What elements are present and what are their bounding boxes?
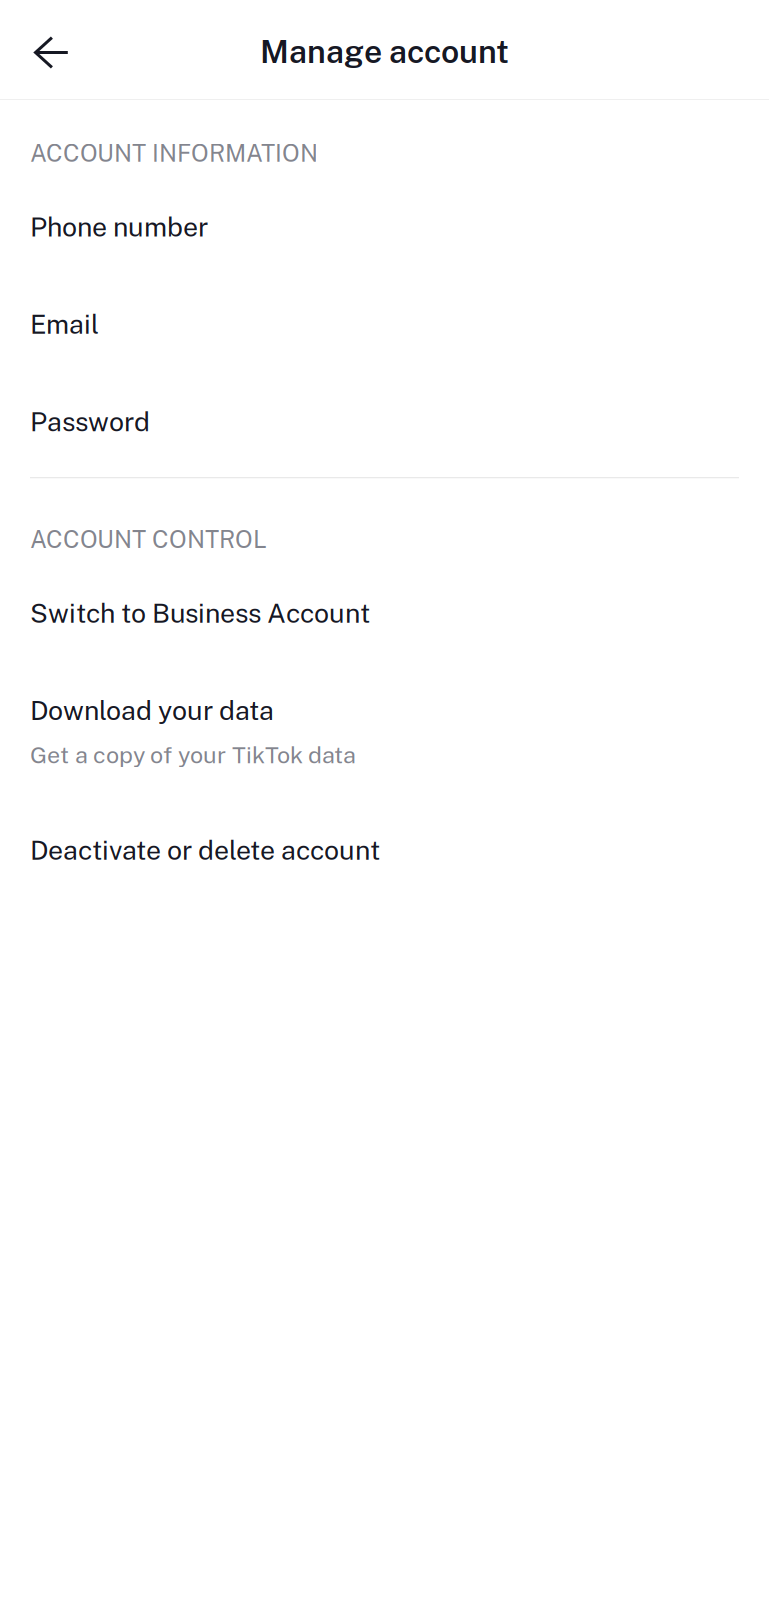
staticText: ACCOUNT CONTROL [30,525,267,553]
button[interactable]: Phone number [0,167,769,275]
staticText: Download your data [30,695,274,726]
staticText: ACCOUNT INFORMATION [30,139,318,167]
staticText: Email [30,308,99,340]
button[interactable]: Download your data [0,662,769,801]
button[interactable]: Switch to Business Account [0,553,769,662]
staticText: Deactivate or delete account [30,834,380,866]
staticText: Manage account [260,33,509,70]
staticText: Switch to Business Account [30,597,370,629]
staticText: Get a copy of your TikTok data [30,741,356,768]
staticText: Password [30,406,150,437]
button[interactable]: Password [0,373,769,470]
button[interactable]: Email [0,275,769,373]
staticText: Phone number [30,211,208,242]
button[interactable]: Back [0,16,91,83]
button[interactable]: Deactivate or delete account [0,801,769,899]
